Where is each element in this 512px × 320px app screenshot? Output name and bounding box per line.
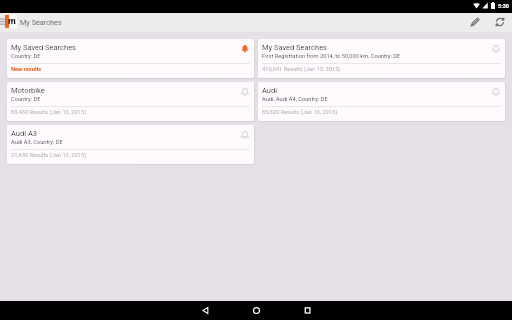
button[interactable]: My Saved Searches	[258, 39, 505, 78]
button[interactable]: Audi A3	[7, 125, 254, 164]
staticText: 85,320 Results (Jan 13, 2015)	[262, 109, 338, 116]
staticText: My Searches	[20, 18, 62, 27]
staticText: 83,460 Results (Jan 13, 2015)	[11, 109, 87, 116]
staticText: m	[8, 16, 16, 27]
staticText: Motorbike	[11, 86, 45, 95]
button[interactable]: Edit	[463, 13, 487, 32]
staticText: New results	[11, 66, 42, 73]
staticText: My Saved Searches	[262, 43, 327, 52]
button[interactable]: Audi	[258, 82, 505, 121]
button[interactable]: Recent apps	[282, 301, 333, 320]
staticText: Audi A3	[11, 129, 38, 138]
staticText: Audi A3, Country: DE	[11, 139, 63, 146]
button[interactable]: Toggle notification for Audi	[488, 82, 505, 106]
button[interactable]: Home	[231, 301, 282, 320]
button[interactable]: Refresh	[487, 13, 511, 32]
staticText: My Saved Searches	[11, 43, 76, 52]
staticText: 5:30	[498, 3, 510, 9]
staticText: First Registration from 2014, to 50,000 …	[262, 53, 401, 60]
button[interactable]: Toggle notification for Audi A3	[237, 125, 254, 149]
button[interactable]: My Saved Searches	[7, 39, 254, 78]
button[interactable]: Motorbike	[7, 82, 254, 121]
button[interactable]: Toggle notification for My Saved Searche…	[488, 39, 505, 63]
button[interactable]: mobile.de logo	[5, 15, 17, 28]
staticText: 21,436 Results (Jan 13, 2015)	[11, 152, 87, 159]
staticText: Country: DE	[11, 53, 41, 60]
staticText: Audi	[262, 86, 278, 95]
staticText: 410,041 Results (Jan 13, 2015)	[262, 66, 341, 73]
button[interactable]: Back	[180, 301, 231, 320]
button[interactable]: Toggle notification for My Saved Searche…	[237, 39, 254, 63]
button[interactable]: Toggle notification for Motorbike	[237, 82, 254, 106]
staticText: Country: DE	[11, 96, 41, 103]
button[interactable]: Open navigation drawer	[0, 13, 5, 32]
staticText: Audi, Audi A4, Country: DE	[262, 96, 328, 103]
